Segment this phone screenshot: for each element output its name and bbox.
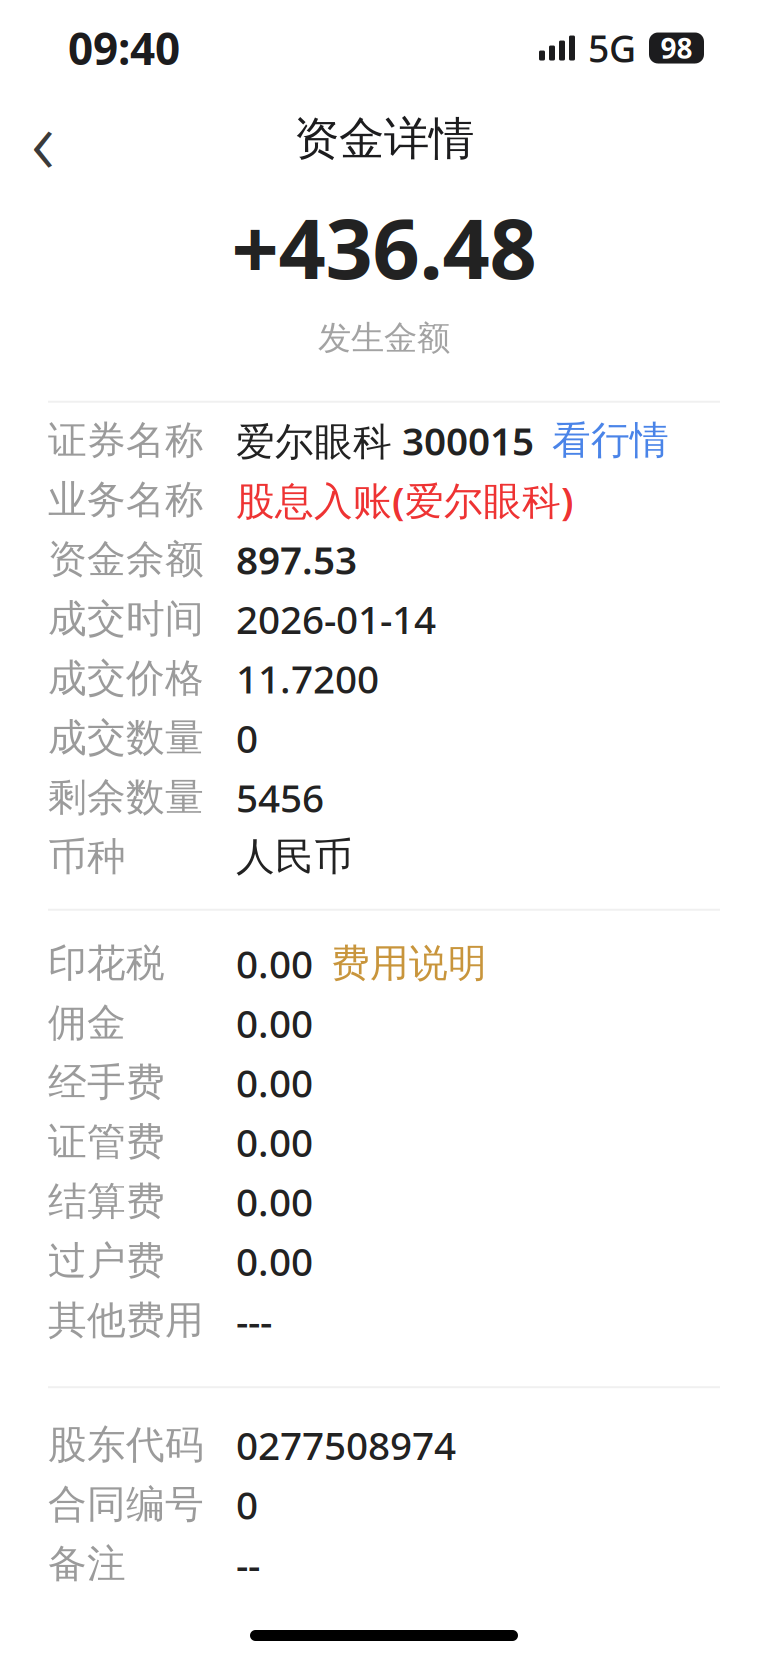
staticText: 剩余数量 [48,774,204,821]
staticText: 业务名称 [48,476,204,524]
staticText: ‹ [31,79,55,199]
staticText: 11.7200 [236,653,379,704]
staticText: 合同编号 [48,1481,204,1528]
staticText: 人民币 [236,833,353,881]
staticText: 币种 [48,833,126,881]
staticText: 5456 [236,772,324,823]
staticText: -- [236,1538,260,1590]
staticText: 股东代码 [48,1421,204,1469]
staticText: 5G [588,23,636,73]
staticText: 备注 [48,1540,126,1588]
staticText: 98 [660,29,692,67]
staticText: 费用说明 [331,940,487,987]
staticText: 结算费 [48,1178,165,1225]
staticText: 成交数量 [48,714,204,762]
staticText: 资金余额 [48,536,204,583]
staticText: 证券名称 [48,417,204,464]
button[interactable]: 看行情 [534,409,669,472]
staticText: 成交时间 [48,595,204,643]
staticText: 成交价格 [48,655,204,702]
staticText: 897.53 [236,534,357,585]
staticText: 爱尔眼科 300015 [236,415,534,466]
staticText: 证管费 [48,1118,165,1166]
button[interactable]: 费用说明 [313,932,487,995]
staticText: --- [236,1295,272,1346]
staticText: 看行情 [552,417,669,464]
staticText: 0.00 [236,1176,313,1227]
staticText: 0 [236,1479,258,1530]
button[interactable]: Back [0,96,86,182]
staticText: 0.00 [236,1057,313,1108]
staticText: 股息入账(爱尔眼科) [236,474,574,526]
staticText: 0.00 [236,1116,313,1168]
staticText: 印花税 [48,940,165,987]
staticText: 资金详情 [294,111,474,167]
staticText: 0.00 [236,997,313,1049]
staticText: 佣金 [48,999,126,1047]
staticText: 0.00 [236,938,313,989]
staticText: 发生金额 [318,318,450,359]
staticText: 经手费 [48,1059,165,1106]
staticText: +436.48 [231,192,536,302]
staticText: 其他费用 [48,1297,204,1344]
staticText: 2026-01-14 [236,593,436,645]
staticText: 过户费 [48,1237,165,1285]
staticText: 0277508974 [236,1419,456,1471]
staticText: 0 [236,712,258,764]
staticText: 09:40 [68,19,180,77]
staticText: 0.00 [236,1235,313,1287]
